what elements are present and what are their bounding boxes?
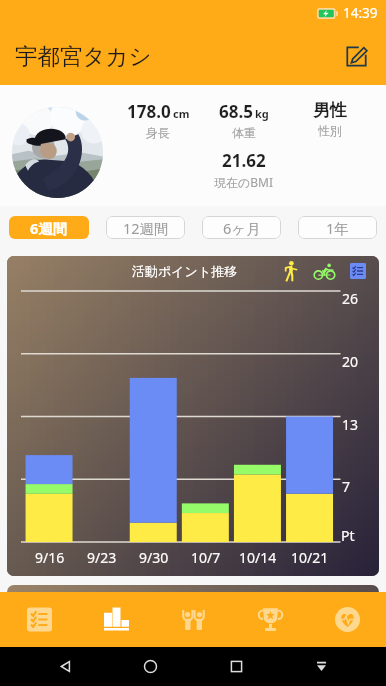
button[interactable]: Back: [45, 647, 85, 686]
staticText: 活動ポイント推移: [132, 263, 238, 279]
staticText: 10/21: [291, 548, 329, 567]
button[interactable]: Health: [309, 592, 386, 647]
staticText: 9/30: [139, 548, 169, 567]
staticText: 現在のBMI: [214, 174, 274, 190]
staticText: 身長: [146, 125, 170, 140]
staticText: 10/7: [191, 548, 221, 567]
button[interactable]: 1年: [298, 216, 377, 239]
button[interactable]: Edit profile: [338, 38, 374, 74]
staticText: 10/14: [239, 548, 277, 567]
button[interactable]: 6ヶ月: [202, 216, 281, 239]
staticText: 178.0: [127, 100, 171, 123]
button[interactable]: Activity list: [347, 260, 369, 282]
staticText: cm: [173, 106, 190, 121]
staticText: 男性: [313, 100, 347, 121]
staticText: 14:39: [343, 4, 378, 22]
staticText: 体重: [232, 125, 256, 140]
button[interactable]: 12週間: [106, 216, 185, 239]
staticText: kg: [255, 106, 269, 121]
staticText: 13: [342, 415, 359, 434]
button[interactable]: 6週間: [9, 216, 89, 239]
staticText: 6ヶ月: [223, 218, 261, 238]
button[interactable]: Profile photo: [0, 85, 386, 206]
button[interactable]: Friends: [155, 592, 232, 647]
staticText: 宇都宮タカシ: [15, 42, 152, 70]
button[interactable]: Recent apps: [216, 647, 256, 686]
staticText: 21.62: [222, 149, 266, 172]
button[interactable]: Records: [0, 592, 78, 647]
staticText: 26: [342, 289, 359, 308]
staticText: 1年: [326, 218, 349, 238]
button[interactable]: Cycling: [313, 260, 335, 282]
staticText: 68.5: [219, 100, 253, 123]
staticText: 12週間: [123, 218, 169, 238]
staticText: 7: [342, 477, 351, 496]
button[interactable]: Walking: [279, 260, 301, 282]
button[interactable]: Home: [130, 647, 170, 686]
button[interactable]: Awards: [232, 592, 309, 647]
staticText: 9/16: [35, 548, 65, 567]
button[interactable]: Profile photo: [12, 107, 103, 198]
staticText: 6週間: [30, 218, 68, 238]
staticText: 9/23: [87, 548, 117, 567]
staticText: Pt: [341, 526, 355, 545]
button[interactable]: Statistics: [78, 592, 155, 647]
staticText: 20: [342, 352, 359, 371]
button[interactable]: Hide navigation bar: [301, 647, 341, 686]
staticText: 性別: [318, 123, 342, 138]
